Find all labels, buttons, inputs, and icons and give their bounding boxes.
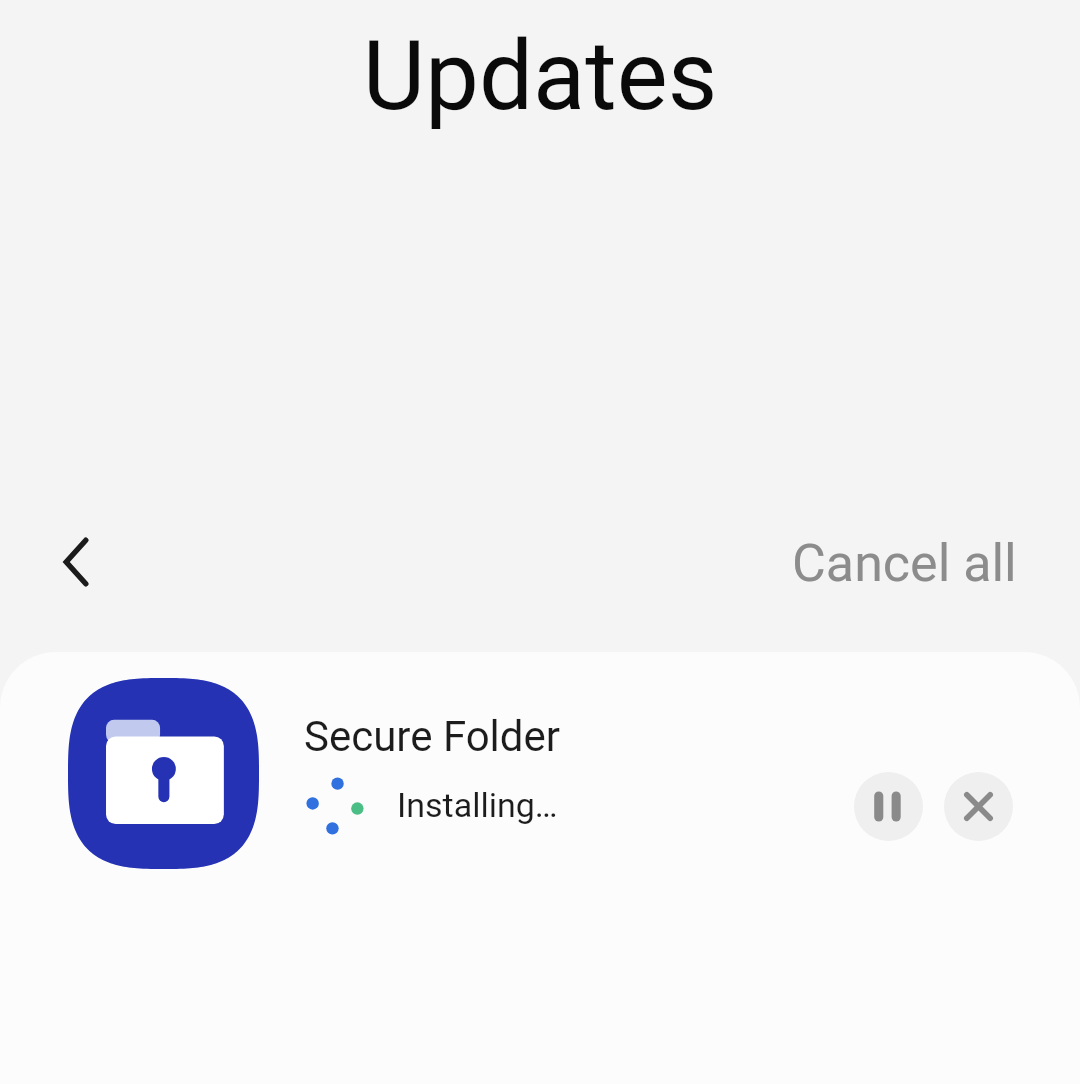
- staticText: Updates: [0, 20, 1080, 133]
- button[interactable]: [0, 660, 1080, 888]
- staticText: Secure Folder: [304, 712, 561, 761]
- staticText: Cancel all: [792, 533, 1017, 594]
- button[interactable]: Cancel download: [944, 772, 1013, 841]
- button[interactable]: Navigate up: [28, 514, 124, 610]
- button[interactable]: Cancel all: [792, 515, 1017, 611]
- staticText: Installing…: [397, 785, 558, 825]
- button[interactable]: Pause download: [854, 772, 923, 841]
